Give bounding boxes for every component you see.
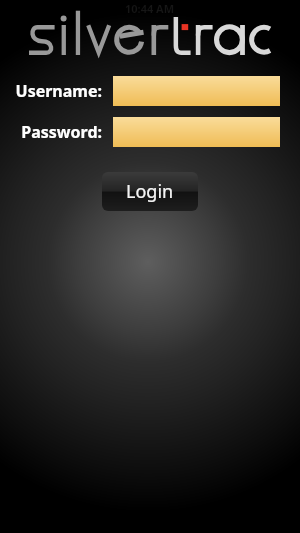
- staticText: Password:: [0, 121, 102, 143]
- staticText: Username:: [0, 80, 102, 102]
- staticText: 10:44 AM: [125, 1, 175, 16]
- button[interactable]: [113, 76, 280, 106]
- button[interactable]: Login: [102, 172, 198, 211]
- staticText: Login: [126, 179, 174, 204]
- button[interactable]: [113, 117, 280, 147]
